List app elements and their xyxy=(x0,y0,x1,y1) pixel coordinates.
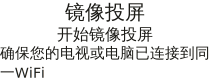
staticText: 开始镜像投屏 xyxy=(57,25,153,44)
staticText: 镜像投屏 xyxy=(65,0,145,25)
staticText: 确保您的电视或电脑已连接到同一WiFi xyxy=(0,44,210,82)
